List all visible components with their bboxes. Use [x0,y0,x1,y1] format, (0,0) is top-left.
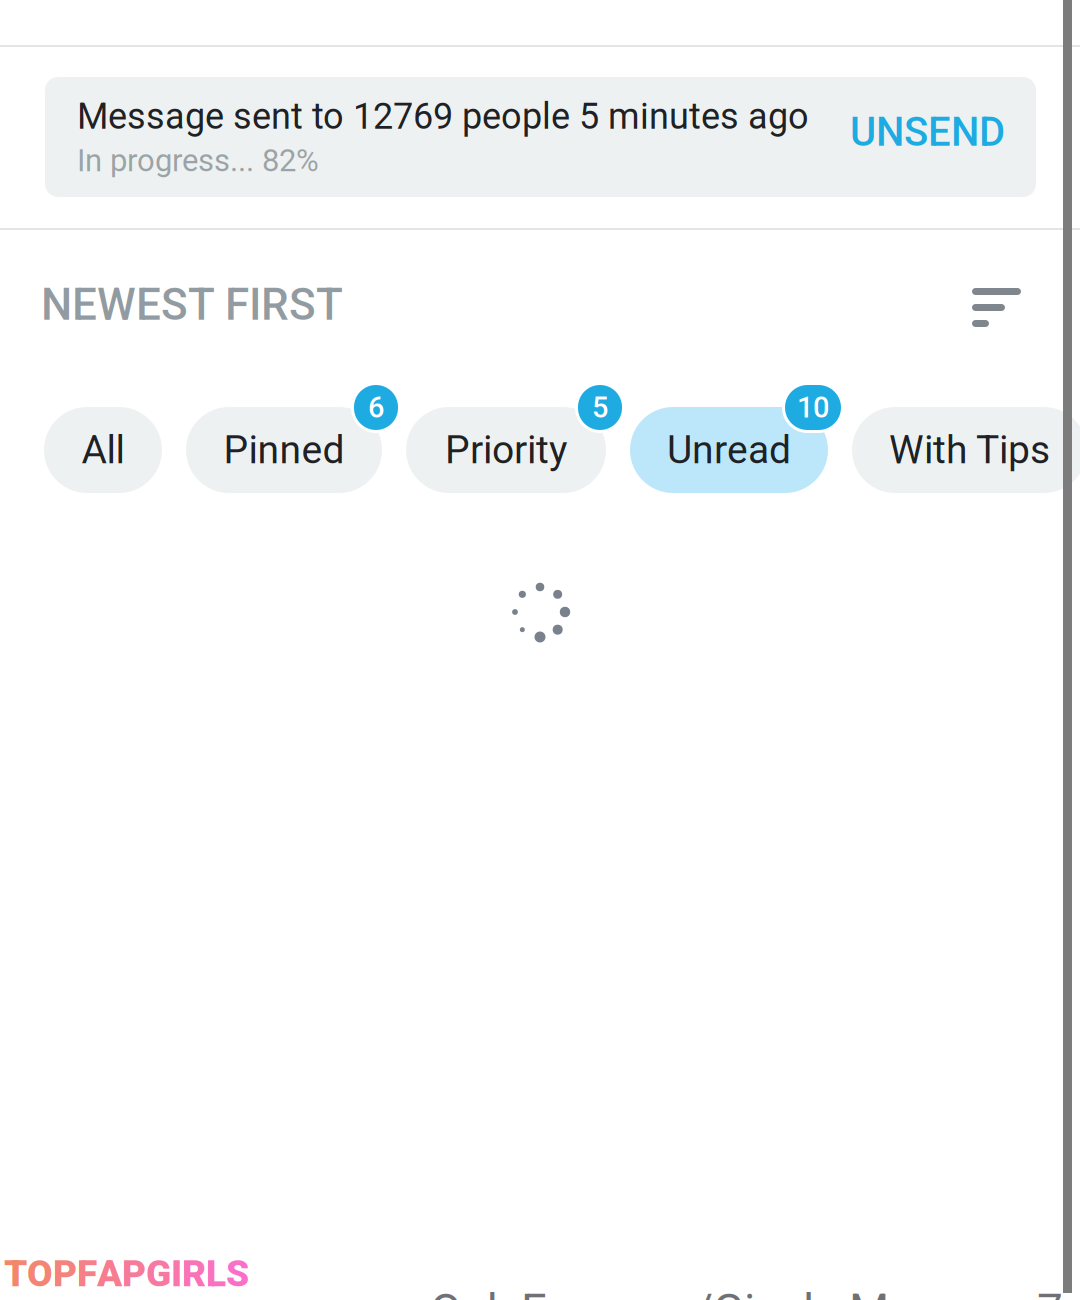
button[interactable]: Sort order [972,288,1021,327]
button[interactable]: Message sent to 12769 people 5 minutes a… [45,77,1036,197]
staticText: G [146,1252,171,1295]
staticText: UNSEND [850,109,1005,155]
staticText: 6 [368,390,384,424]
staticText: With Tips [889,427,1050,473]
button[interactable]: Priority [406,385,628,493]
staticText: Message sent to 12769 people 5 minutes a… [77,95,809,137]
staticText: A [97,1252,122,1295]
staticText: T [4,1252,27,1295]
staticText: In progress... 82% [77,142,319,179]
staticText: S [226,1252,249,1295]
staticText: L [206,1252,226,1295]
staticText: Oak Frances /Gisele Mae 7 [430,1284,1063,1300]
staticText: 5 [592,390,608,424]
button[interactable]: Unread [630,385,850,493]
staticText: Pinned [223,427,344,473]
staticText: NEWEST FIRST [41,279,343,331]
staticText: P [53,1252,77,1295]
staticText: I [171,1252,182,1295]
button[interactable]: All [44,385,184,493]
staticText: O [27,1252,53,1295]
staticText: P [122,1252,146,1295]
button[interactable]: With Tips [852,385,1080,493]
staticText: All [81,427,124,473]
staticText: Priority [445,427,567,473]
staticText: R [182,1252,206,1295]
staticText: F [77,1252,97,1295]
staticText: Unread [667,427,791,473]
button[interactable]: Pinned [186,385,404,493]
staticText: 10 [797,390,829,424]
